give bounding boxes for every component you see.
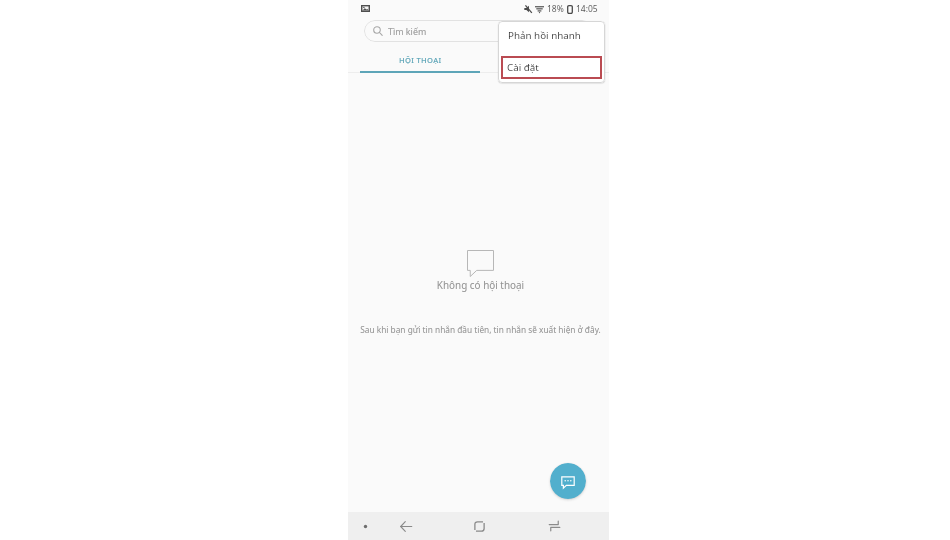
button[interactable]: Cài đặt <box>501 56 602 79</box>
staticText: 18% <box>547 3 564 15</box>
staticText: Cài đặt <box>507 61 539 74</box>
button[interactable]: Assistant <box>350 512 380 540</box>
button[interactable]: Home <box>452 512 506 540</box>
staticText: HỘI THOẠI <box>399 55 442 65</box>
staticText: Tìm kiếm <box>388 25 427 37</box>
staticText: Sau khi bạn gửi tin nhắn đầu tiên, tin n… <box>350 324 611 335</box>
button[interactable]: HỘI THOẠI <box>359 45 479 73</box>
button[interactable]: Tìm kiếm <box>364 20 593 42</box>
button[interactable]: Back <box>379 512 433 540</box>
button[interactable]: Recent apps <box>527 512 581 540</box>
staticText: 14:05 <box>576 3 598 15</box>
staticText: Phản hồi nhanh <box>508 29 581 42</box>
button[interactable]: New conversation <box>550 463 586 499</box>
staticText: Không có hội thoại <box>350 278 611 291</box>
button[interactable]: Phản hồi nhanh <box>498 21 605 54</box>
